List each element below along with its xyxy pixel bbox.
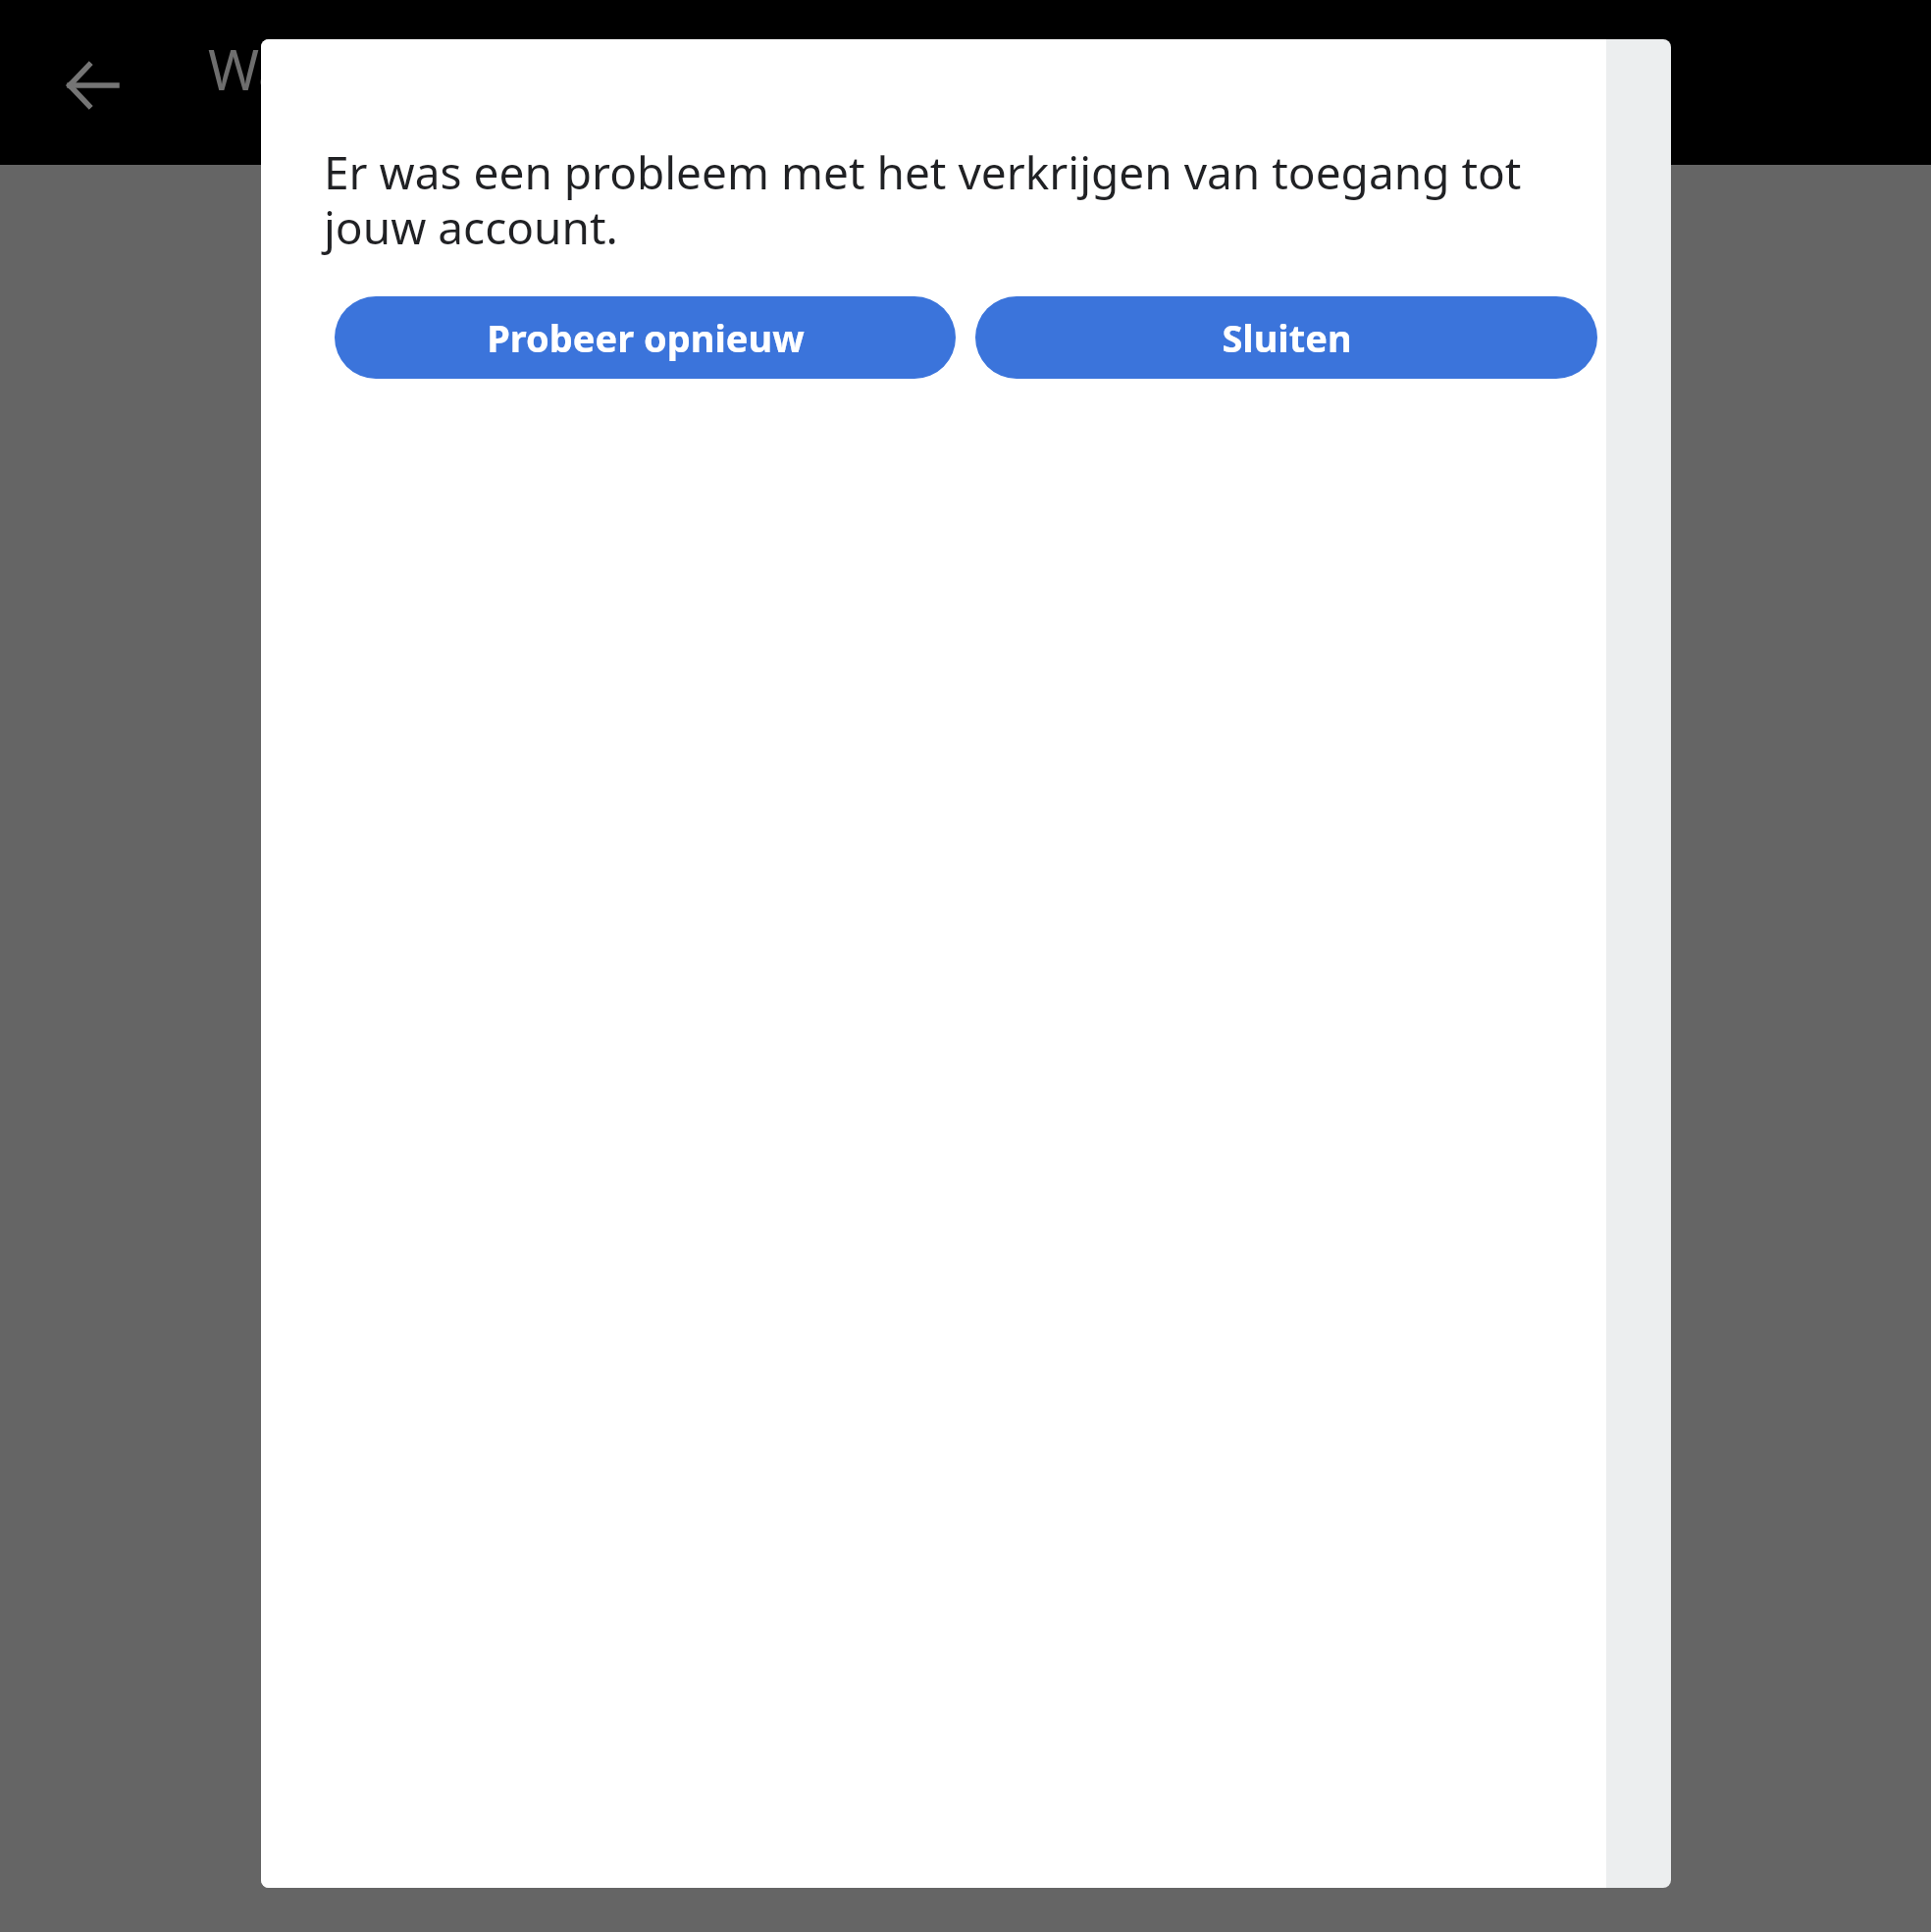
button[interactable]: Probeer opnieuw <box>335 296 956 379</box>
staticText: Probeer opnieuw <box>487 312 805 363</box>
staticText: Er was een probleem met het verkrijgen v… <box>324 141 1602 257</box>
staticText: Wachtwoord <box>208 31 535 106</box>
staticText: Sluiten <box>1222 312 1352 363</box>
button[interactable]: Sluiten <box>975 296 1597 379</box>
button[interactable]: Back <box>49 41 137 130</box>
